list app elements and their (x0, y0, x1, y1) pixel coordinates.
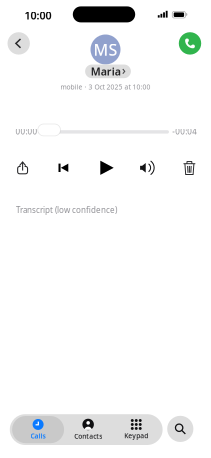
staticText: -00:04 (172, 126, 197, 137)
staticText: 00:00 (15, 126, 37, 137)
staticText: 10:00 (25, 8, 52, 22)
staticText: Contacts (74, 432, 102, 440)
staticText: mobile · 3 Oct 2025 at 10:00 (60, 82, 150, 91)
staticText: Calls (31, 431, 46, 440)
button[interactable]: Calls (12, 416, 64, 443)
button[interactable]: Share (8, 156, 38, 180)
staticText: Transcript (low confidence) (16, 204, 117, 215)
button[interactable]: Restart (48, 156, 78, 180)
button[interactable]: Back (7, 32, 30, 55)
staticText: MS (93, 39, 117, 60)
button[interactable]: Play (92, 156, 122, 180)
staticText: Maria (91, 64, 121, 78)
button[interactable]: Maria contact details (85, 64, 131, 78)
button[interactable]: Speaker (133, 156, 163, 180)
button[interactable]: Contacts (64, 416, 112, 443)
staticText: Keypad (124, 431, 148, 440)
button[interactable]: Call Maria (179, 32, 201, 55)
button[interactable]: Delete (174, 156, 204, 180)
button[interactable]: Search (167, 416, 193, 442)
button[interactable]: Keypad (112, 416, 160, 443)
